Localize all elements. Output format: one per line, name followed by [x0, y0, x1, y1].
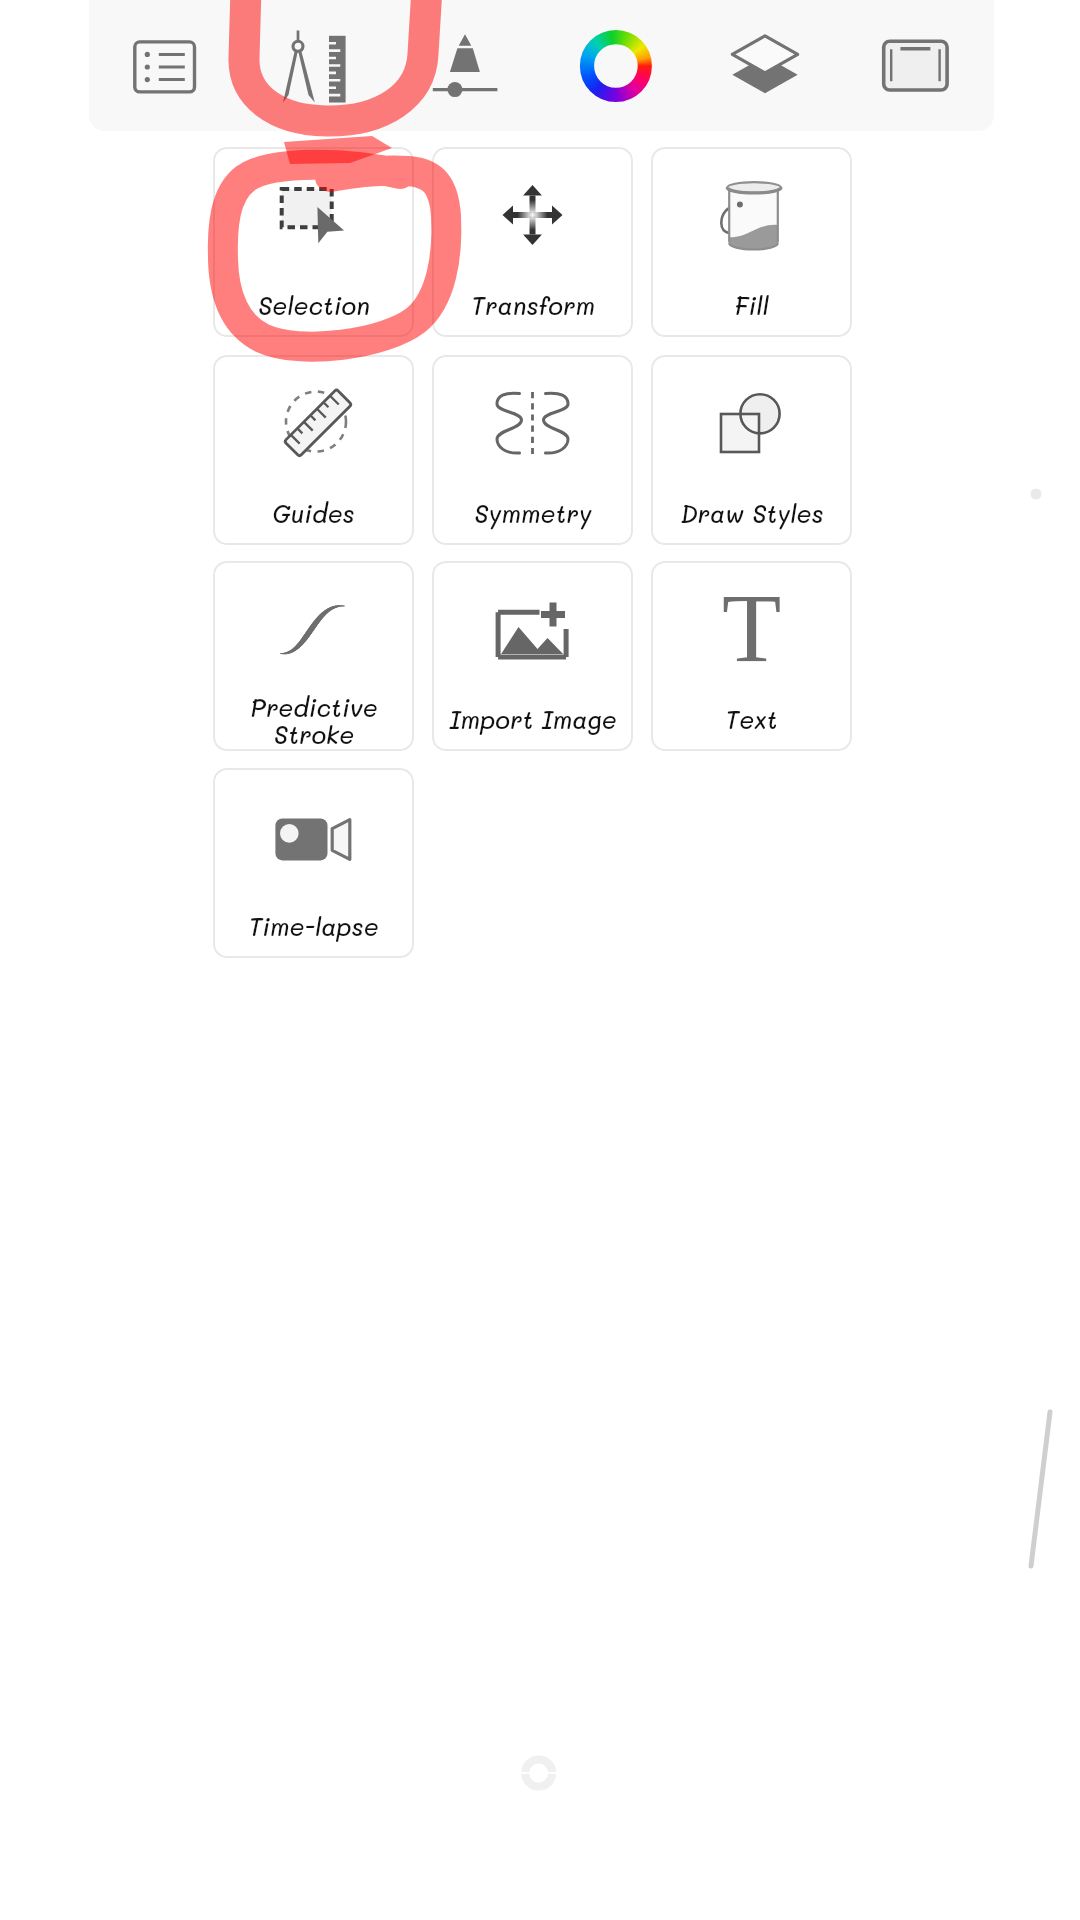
staticText: Symmetry [474, 497, 592, 529]
button[interactable]: Time-lapse [213, 768, 414, 958]
button[interactable]: Tools [239, 0, 390, 131]
button[interactable]: Layers [692, 0, 843, 131]
button[interactable]: T [651, 561, 852, 751]
staticText: Draw Styles [680, 497, 824, 529]
button[interactable]: Predictive Stroke [213, 561, 414, 751]
staticText: Text [725, 703, 778, 735]
staticText: Time-lapse [248, 910, 379, 942]
button[interactable]: Canvas [843, 0, 994, 131]
button[interactable]: Draw Styles [651, 355, 852, 545]
button[interactable]: Menu [89, 0, 239, 131]
button[interactable]: Symmetry [432, 355, 633, 545]
staticText: Fill [734, 289, 769, 321]
staticText: T [722, 575, 782, 682]
button[interactable]: Transform [432, 147, 633, 337]
staticText: Transform [471, 289, 595, 321]
staticText: Import Image [449, 703, 617, 735]
staticText: Guides [272, 497, 355, 529]
staticText: Predictive Stroke [250, 691, 378, 750]
button[interactable]: Fill [651, 147, 852, 337]
button[interactable]: Color [541, 0, 692, 131]
button[interactable]: Selection [213, 147, 414, 337]
button[interactable]: Brush size [390, 0, 541, 131]
button[interactable]: Import Image [432, 561, 633, 751]
staticText: Selection [258, 289, 370, 321]
button[interactable]: Guides [213, 355, 414, 545]
